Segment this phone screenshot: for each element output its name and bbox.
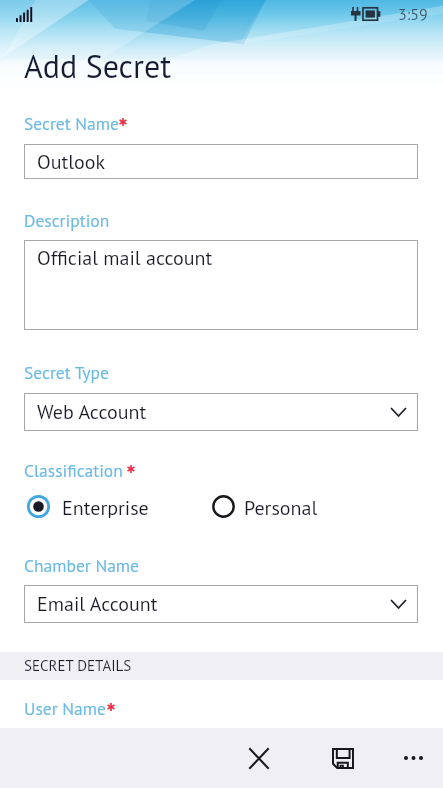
button[interactable]: Official mail account bbox=[24, 240, 418, 330]
staticText: User Name bbox=[24, 697, 106, 720]
staticText: SECRET DETAILS bbox=[24, 656, 132, 675]
staticText: Web Account bbox=[37, 399, 147, 425]
button[interactable]: Cancel bbox=[234, 728, 283, 788]
staticText: Secret Type bbox=[24, 361, 109, 384]
staticText: Secret Name bbox=[24, 112, 119, 135]
staticText: 3:59 bbox=[398, 4, 428, 25]
staticText: Personal bbox=[244, 495, 318, 518]
button[interactable]: Save bbox=[318, 728, 367, 788]
button[interactable]: More options bbox=[389, 728, 438, 788]
staticText: Chamber Name bbox=[24, 554, 139, 577]
button[interactable]: Personal bbox=[212, 495, 318, 518]
button[interactable]: Web Account bbox=[24, 393, 418, 431]
staticText: Email Account bbox=[37, 591, 158, 617]
staticText: Official mail account bbox=[37, 245, 213, 271]
staticText: Outlook bbox=[37, 149, 106, 175]
staticText: Enterprise bbox=[62, 495, 149, 518]
button[interactable]: Outlook bbox=[24, 144, 418, 179]
button[interactable]: Email Account bbox=[24, 585, 418, 623]
button[interactable]: Enterprise bbox=[27, 495, 149, 518]
staticText: Description bbox=[24, 209, 110, 232]
staticText: Classification bbox=[24, 459, 123, 482]
staticText: Add Secret bbox=[24, 45, 172, 86]
